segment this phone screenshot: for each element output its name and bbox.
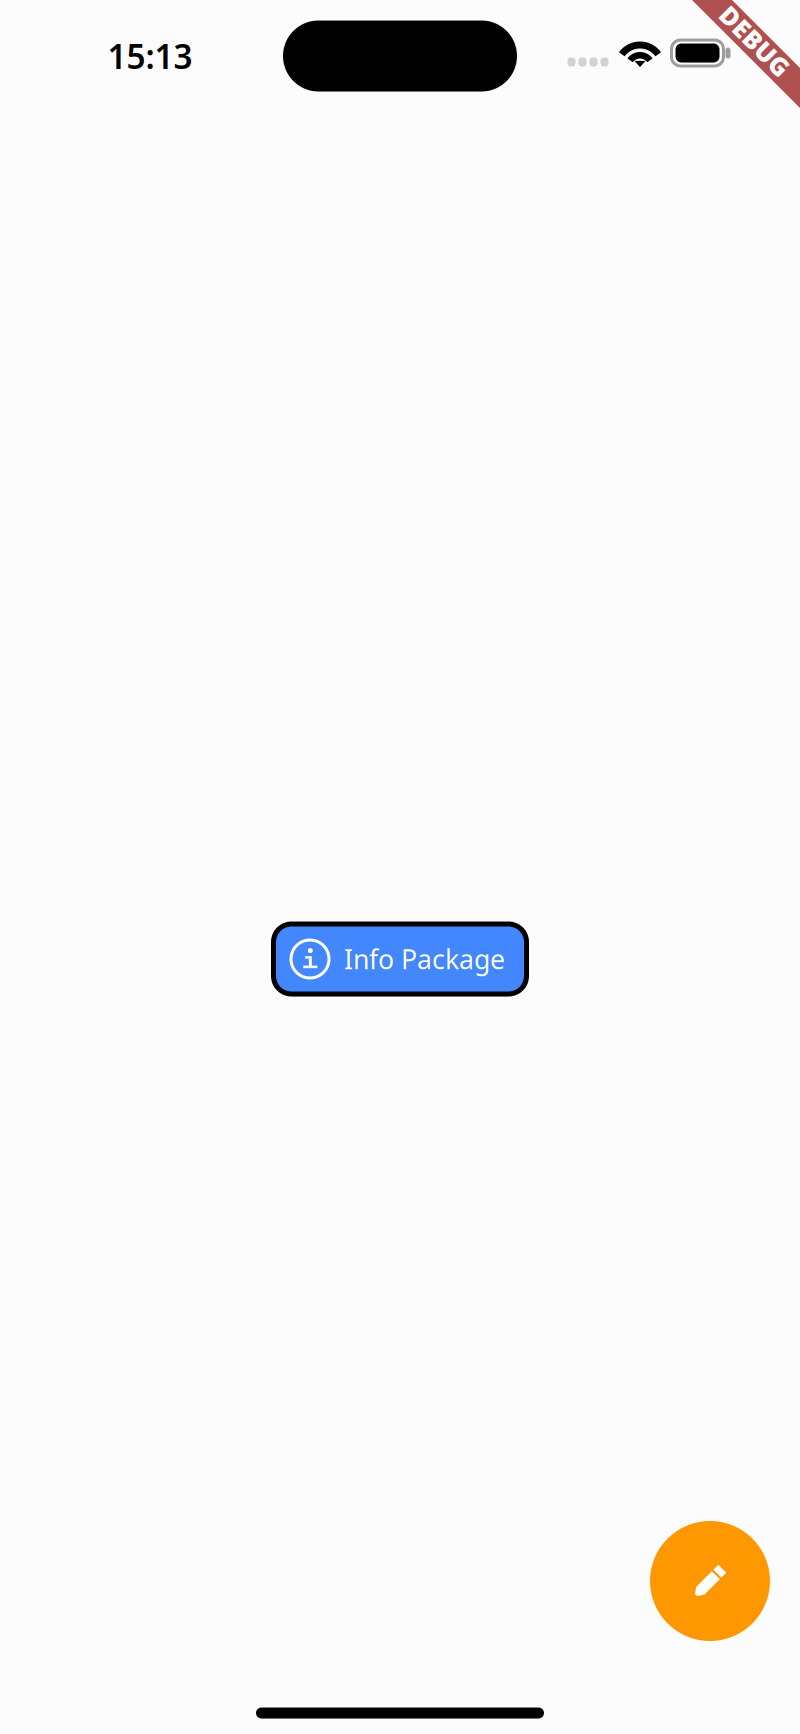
staticText: 15:13 [107,34,192,78]
button[interactable]: Compose [650,1521,770,1641]
staticText: DEBUG [711,24,799,58]
staticText: Info Package [344,941,505,977]
button[interactable]: Info Package [272,924,528,994]
